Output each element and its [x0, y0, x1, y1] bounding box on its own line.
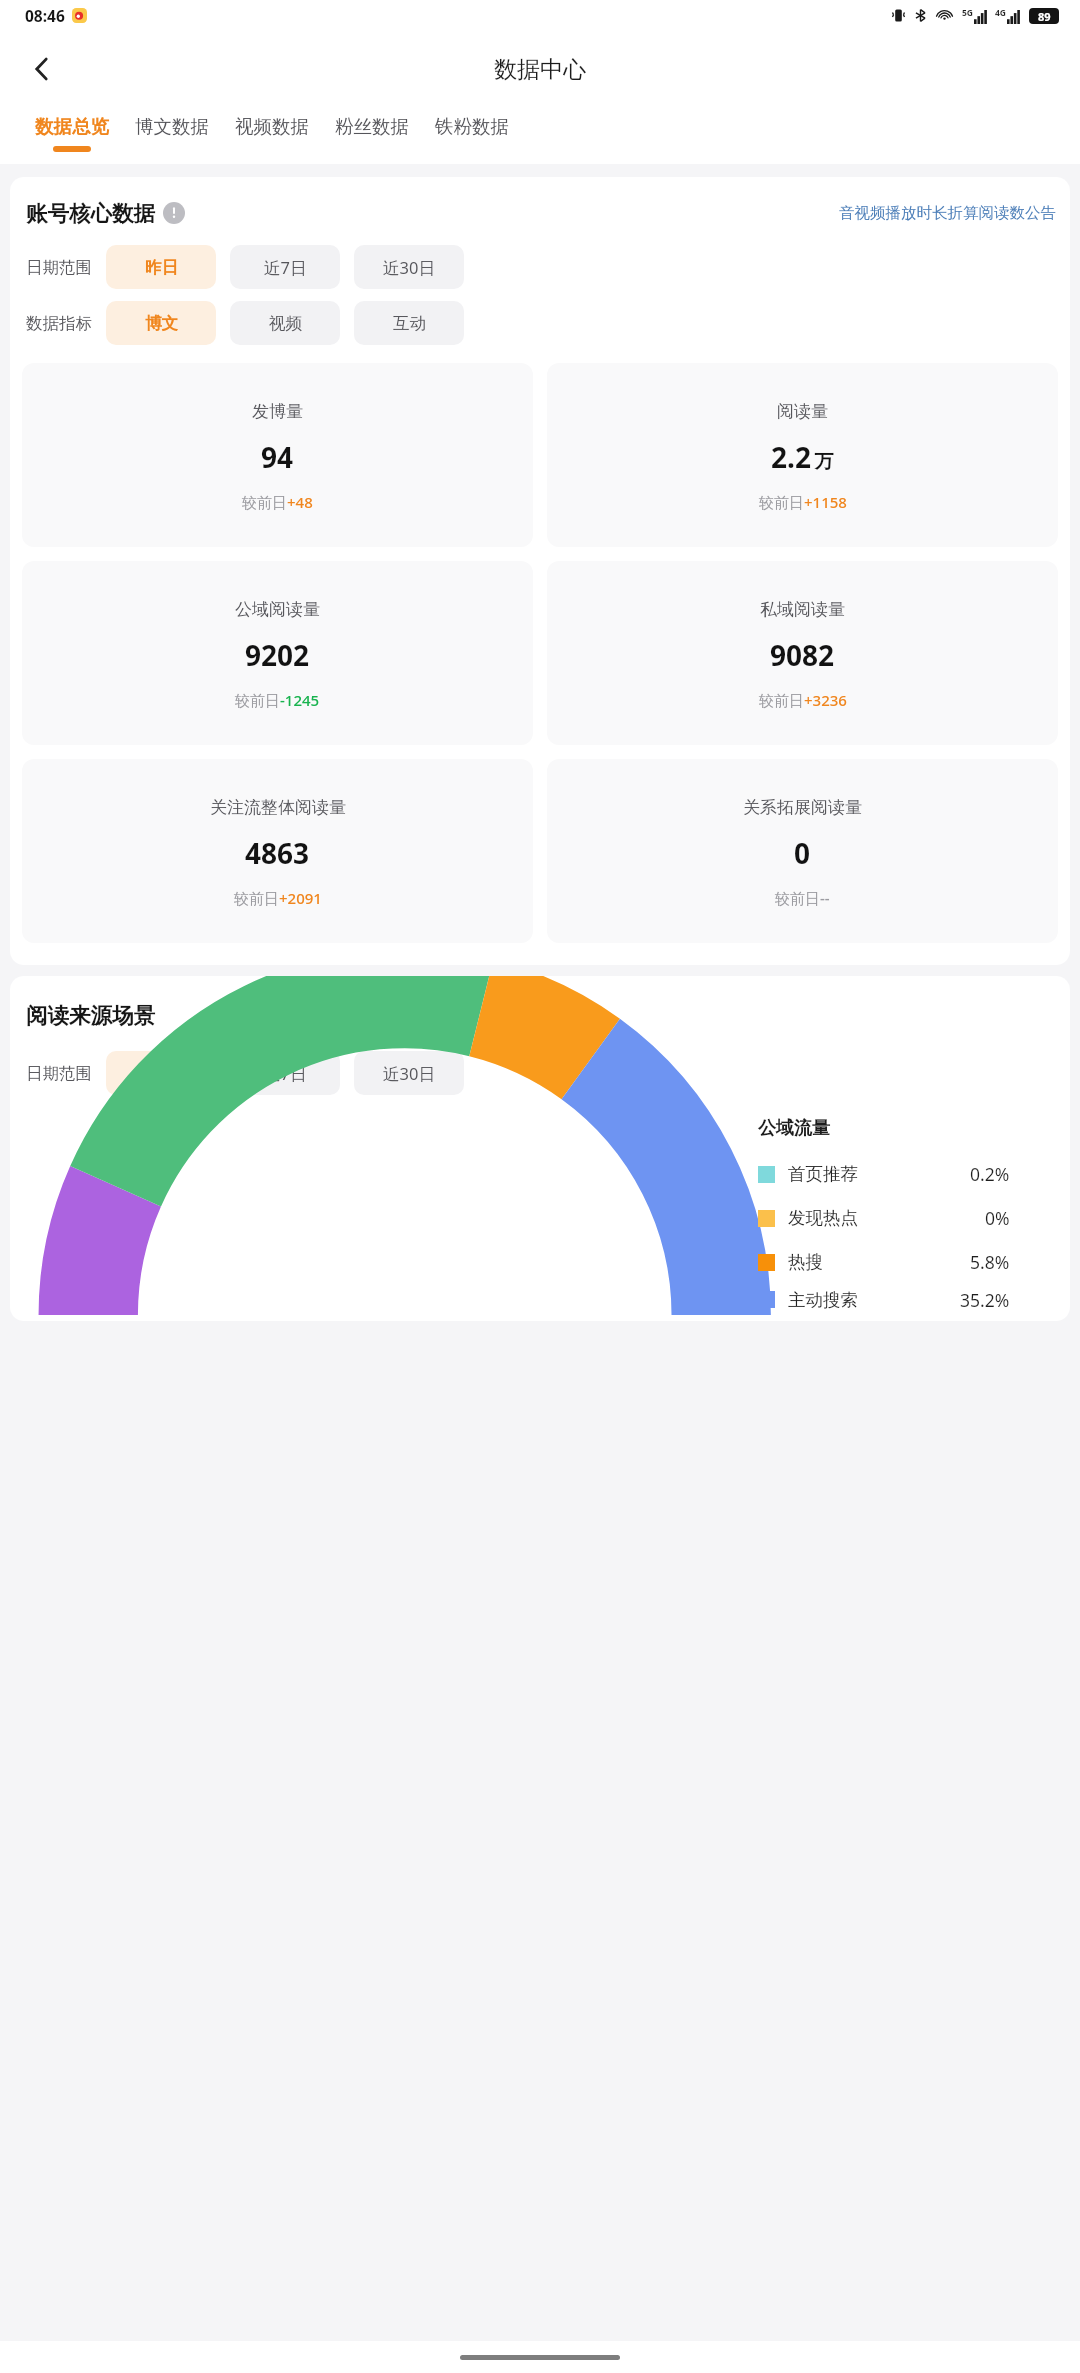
staticText: 互动: [393, 313, 426, 334]
staticText: 热搜: [788, 1251, 823, 1273]
staticText: 0.2%: [970, 1162, 1010, 1186]
button[interactable]: 关系拓展阅读量: [547, 759, 1058, 943]
staticText: 博文数据: [135, 115, 209, 138]
staticText: 4863: [245, 834, 310, 872]
staticText: 关系拓展阅读量: [743, 797, 862, 818]
staticText: 89: [1038, 9, 1051, 24]
button[interactable]: 主动搜索: [758, 1284, 1058, 1315]
staticText: 私域阅读量: [760, 599, 845, 620]
staticText: 阅读量: [777, 401, 828, 422]
staticText: 近7日: [264, 256, 307, 279]
button[interactable]: 近30日: [354, 245, 464, 289]
staticText: 0%: [985, 1206, 1010, 1230]
button[interactable]: 说明: [163, 202, 185, 224]
staticText: 账号核心数据: [26, 200, 155, 227]
button[interactable]: 近7日: [230, 1051, 340, 1095]
staticText: 较前日+1158: [759, 492, 847, 512]
staticText: 日期范围: [26, 1063, 92, 1084]
staticText: 较前日+2091: [234, 888, 322, 908]
button[interactable]: 博文: [106, 301, 216, 345]
button[interactable]: 公域阅读量: [22, 561, 533, 745]
staticText: 公域阅读量: [235, 599, 320, 620]
staticText: 铁粉数据: [435, 115, 509, 138]
staticText: 昨日: [145, 257, 178, 278]
staticText: 9202: [245, 636, 310, 674]
staticText: 94: [261, 438, 294, 476]
button[interactable]: 阅读量: [547, 363, 1058, 547]
staticText: 数据指标: [26, 313, 92, 334]
staticText: 35.2%: [960, 1288, 1010, 1312]
button[interactable]: 发博量: [22, 363, 533, 547]
staticText: 近30日: [383, 1062, 435, 1085]
staticText: 0: [794, 834, 811, 872]
staticText: 日期范围: [26, 257, 92, 278]
button[interactable]: 热搜: [758, 1240, 1058, 1284]
staticText: 发现热点: [788, 1207, 858, 1229]
staticText: 5G: [962, 7, 974, 19]
staticText: 近7日: [264, 1062, 307, 1085]
staticText: 数据总览: [35, 115, 109, 138]
staticText: 5.8%: [970, 1250, 1010, 1274]
staticText: 4G: [995, 7, 1007, 19]
button[interactable]: 私域阅读量: [547, 561, 1058, 745]
button[interactable]: 发现热点: [758, 1196, 1058, 1240]
staticText: 较前日+48: [242, 492, 313, 512]
button[interactable]: 视频: [230, 301, 340, 345]
staticText: 9082: [770, 636, 835, 674]
button[interactable]: 昨日: [106, 245, 216, 289]
button[interactable]: 音视频播放时长折算阅读数公告: [839, 199, 1056, 227]
staticText: 2.2 万: [771, 438, 834, 476]
staticText: 粉丝数据: [335, 115, 409, 138]
button[interactable]: 博文数据: [122, 107, 222, 164]
button[interactable]: 互动: [354, 301, 464, 345]
button[interactable]: 昨日: [106, 1051, 216, 1095]
button[interactable]: 近30日: [354, 1051, 464, 1095]
staticText: 视频: [269, 313, 302, 334]
button[interactable]: 数据总览: [22, 107, 122, 164]
staticText: 公域流量: [758, 1117, 830, 1140]
button[interactable]: 近7日: [230, 245, 340, 289]
staticText: 数据中心: [494, 55, 586, 84]
staticText: 关注流整体阅读量: [210, 797, 346, 818]
staticText: 首页推荐: [788, 1163, 858, 1185]
button[interactable]: 视频数据: [222, 107, 322, 164]
staticText: 较前日--: [775, 888, 830, 908]
staticText: 视频数据: [235, 115, 309, 138]
staticText: 主动搜索: [788, 1289, 858, 1311]
staticText: 阅读来源场景: [26, 1002, 155, 1029]
button[interactable]: 关注流整体阅读量: [22, 759, 533, 943]
button[interactable]: Back: [14, 41, 70, 97]
button[interactable]: 粉丝数据: [322, 107, 422, 164]
staticText: 较前日-1245: [235, 690, 320, 710]
staticText: 发博量: [252, 401, 303, 422]
staticText: 近30日: [383, 256, 435, 279]
staticText: 较前日+3236: [759, 690, 847, 710]
staticText: 博文: [145, 313, 178, 334]
staticText: 08:46: [25, 5, 65, 26]
button[interactable]: 首页推荐: [758, 1152, 1058, 1196]
button[interactable]: 铁粉数据: [422, 107, 522, 164]
